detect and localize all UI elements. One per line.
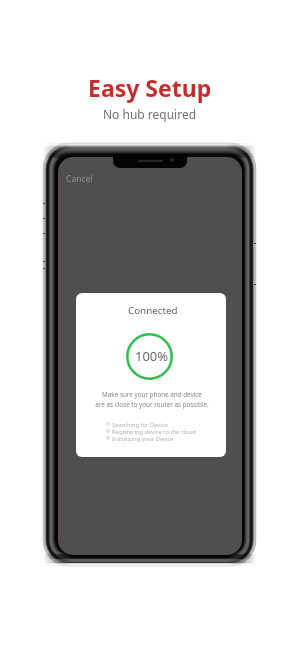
staticText: Initializing your Device [112,435,174,443]
staticText: No hub required [103,106,197,122]
staticText: Make sure your phone and device are as c… [95,390,209,409]
staticText: 100% [135,347,169,365]
button[interactable]: Cancel [66,173,93,185]
staticText: Easy Setup [88,72,212,103]
staticText: Searching for Device [112,421,168,429]
staticText: Registering device to the cloud [112,428,196,436]
staticText: Connected [128,304,178,317]
